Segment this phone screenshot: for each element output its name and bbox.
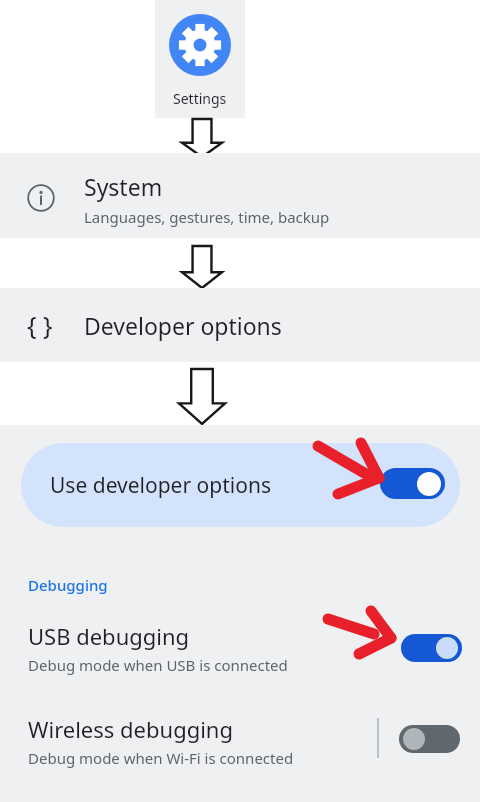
staticText: Debugging [28, 575, 108, 595]
staticText: Debug mode when Wi-Fi is connected [28, 748, 294, 768]
other: Settings app icon [169, 14, 231, 76]
staticText: Developer options [84, 310, 282, 341]
button[interactable]: { } [0, 288, 480, 362]
other: Use developer options toggle, on [380, 468, 445, 499]
button[interactable]: Use developer options [21, 443, 460, 527]
button[interactable]: Settings app icon [155, 0, 245, 118]
staticText: USB debugging [28, 621, 190, 651]
button[interactable]: System [0, 153, 480, 238]
button[interactable]: USB debugging [0, 615, 480, 681]
staticText: System [84, 171, 163, 202]
staticText: Languages, gestures, time, backup [84, 207, 330, 227]
staticText: Settings [173, 89, 227, 108]
staticText: Wireless debugging [28, 714, 233, 744]
button[interactable]: Wireless debugging [0, 708, 480, 774]
staticText: Use developer options [50, 471, 271, 500]
staticText: { } [27, 308, 53, 342]
staticText: Debug mode when USB is connected [28, 655, 288, 675]
